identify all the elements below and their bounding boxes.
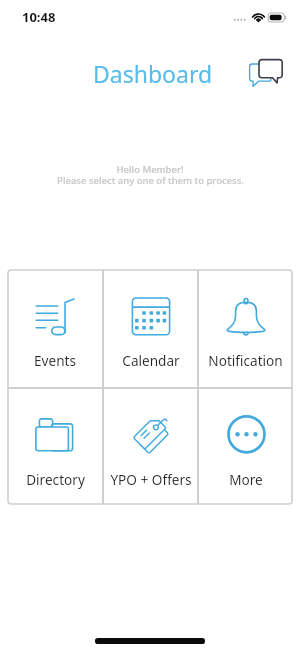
button[interactable]: More xyxy=(199,389,292,504)
staticText: Notification xyxy=(208,351,283,370)
staticText: Calendar xyxy=(122,351,180,370)
button[interactable]: Events xyxy=(8,270,102,387)
staticText: Dashboard xyxy=(93,58,213,89)
staticText: Directory xyxy=(26,470,85,489)
button[interactable]: Notification xyxy=(199,270,292,387)
button[interactable]: Messages xyxy=(243,52,287,92)
staticText: YPO + Offers xyxy=(110,470,192,489)
button[interactable]: Directory xyxy=(8,389,102,504)
staticText: Events xyxy=(34,351,76,370)
button[interactable]: Calendar xyxy=(104,270,197,387)
staticText: More xyxy=(229,470,263,489)
button[interactable]: YPO + Offers xyxy=(104,389,197,504)
staticText: Hello Member! xyxy=(116,163,184,176)
staticText: Please select any one of them to process… xyxy=(57,174,244,187)
staticText: 10:48 xyxy=(22,8,56,26)
